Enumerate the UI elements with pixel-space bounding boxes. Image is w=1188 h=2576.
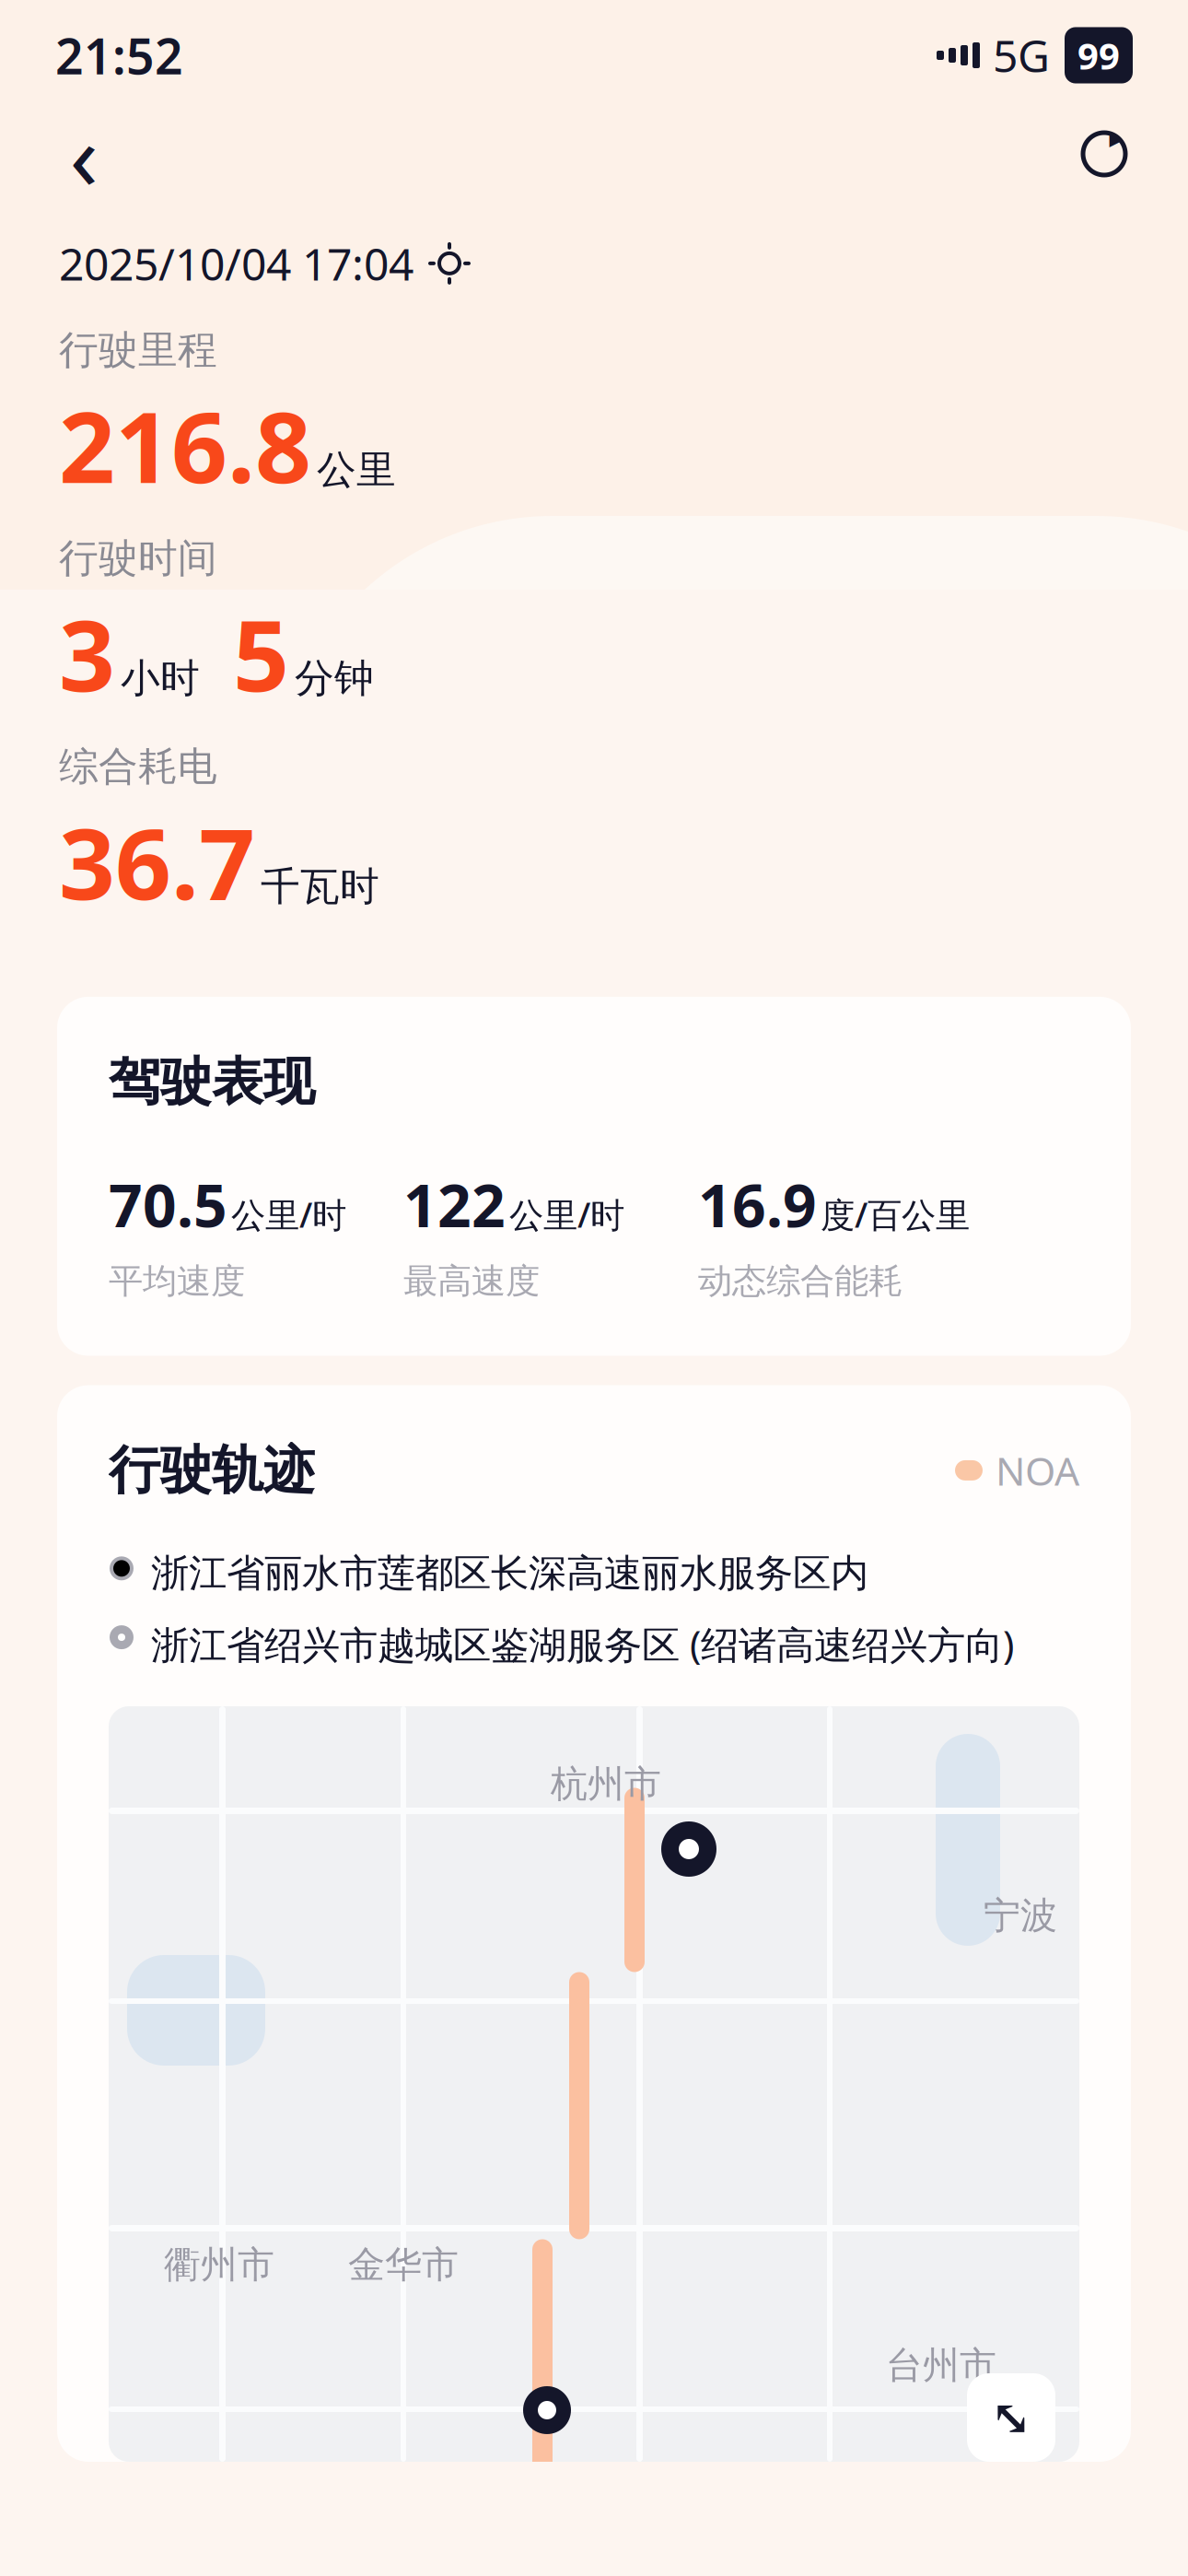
staticText: 99 — [1077, 31, 1120, 80]
staticText: 金华市 — [348, 2242, 459, 2287]
staticText: 动态综合能耗 — [698, 1260, 903, 1302]
staticText: 行驶里程 — [59, 326, 217, 374]
staticText: 千瓦时 — [261, 862, 379, 911]
staticText: 3 — [59, 588, 115, 718]
staticText: 浙江省绍兴市越城区鉴湖服务区 (绍诸高速绍兴方向) — [151, 1619, 1014, 1669]
staticText: 2025/10/04 17:04 — [59, 234, 413, 293]
staticText: 综合耗电 — [59, 742, 217, 791]
staticText: 行驶时间 — [59, 534, 217, 582]
button[interactable]: Refresh — [1072, 122, 1136, 186]
staticText: 分钟 — [295, 654, 374, 702]
staticText: ▸ — [1109, 123, 1123, 154]
staticText: 行驶轨迹 — [109, 1439, 315, 1502]
staticText: 36.7 — [59, 796, 255, 927]
staticText: 公里 — [317, 446, 396, 494]
button[interactable]: Back — [52, 122, 116, 186]
staticText: 21:52 — [55, 23, 183, 88]
staticText: ⤡ — [990, 2389, 1032, 2446]
staticText: 小时 — [121, 654, 200, 702]
staticText: 5G — [993, 26, 1050, 85]
staticText: 度/百公里 — [821, 1192, 970, 1237]
staticText: 最高速度 — [403, 1260, 540, 1302]
staticText: 122 — [403, 1165, 506, 1244]
staticText: 平均速度 — [109, 1260, 245, 1302]
staticText: 16.9 — [698, 1165, 817, 1244]
staticText: 公里/时 — [509, 1192, 624, 1237]
staticText: 杭州市 — [551, 1762, 661, 1807]
staticText: ‹ — [70, 92, 98, 216]
button[interactable]: Expand map — [967, 2373, 1055, 2462]
staticText: NOA — [996, 1444, 1079, 1496]
staticText: 70.5 — [109, 1165, 227, 1244]
staticText: 宁波 — [984, 1893, 1057, 1938]
staticText: 浙江省丽水市莲都区长深高速丽水服务区内 — [151, 1550, 868, 1597]
staticText: 台州市 — [886, 2343, 996, 2388]
staticText: 衢州市 — [164, 2242, 274, 2287]
staticText: 5 — [233, 588, 289, 718]
staticText: 驾驶表现 — [109, 1050, 315, 1114]
staticText: 216.8 — [59, 380, 311, 510]
staticText: 公里/时 — [231, 1192, 346, 1237]
